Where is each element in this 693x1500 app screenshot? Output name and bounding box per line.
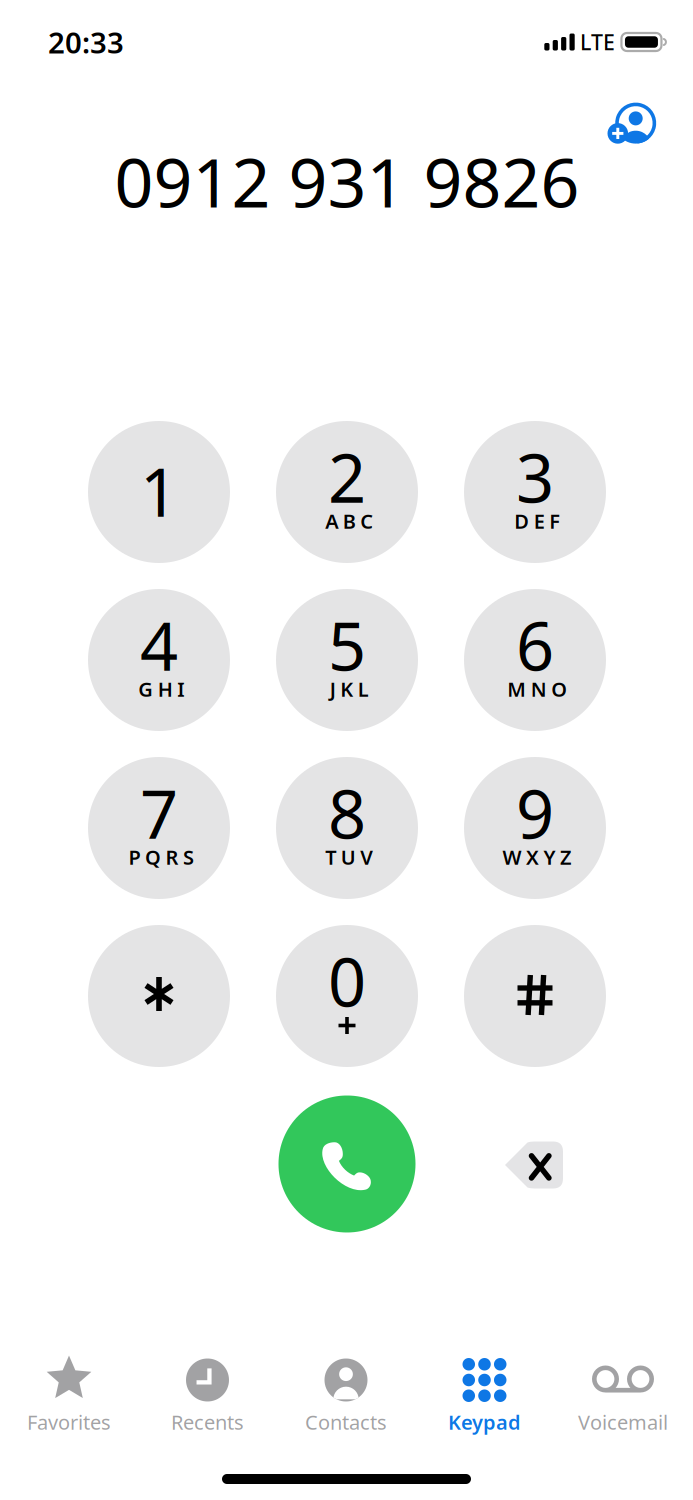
- staticText: Keypad: [448, 1409, 521, 1435]
- staticText: 0: [328, 937, 366, 1025]
- button[interactable]: 6 MNO: [464, 589, 606, 731]
- staticText: GHI: [138, 676, 184, 702]
- staticText: 8: [328, 769, 366, 857]
- staticText: 7: [140, 769, 178, 857]
- button[interactable]: 5 JKL: [276, 589, 418, 731]
- staticText: 6: [516, 601, 554, 689]
- button[interactable]: Contacts: [277, 1322, 415, 1440]
- button[interactable]: 8 TUV: [276, 757, 418, 899]
- staticText: 0912 931 9826: [114, 136, 579, 226]
- button[interactable]: Voicemail: [554, 1322, 692, 1440]
- button[interactable]: Delete: [503, 1141, 563, 1188]
- staticText: Recents: [171, 1409, 244, 1435]
- staticText: 4: [140, 601, 178, 689]
- staticText: TUV: [325, 844, 373, 870]
- staticText: JKL: [330, 676, 369, 702]
- staticText: Contacts: [305, 1409, 387, 1435]
- button[interactable]: 2 ABC: [276, 421, 418, 563]
- button[interactable]: Keypad: [415, 1322, 553, 1440]
- staticText: 20:33: [48, 22, 124, 61]
- staticText: PQRS: [128, 844, 194, 870]
- staticText: 5: [328, 601, 366, 689]
- button[interactable]: Pound: [464, 925, 606, 1067]
- staticText: ABC: [325, 508, 373, 534]
- button[interactable]: 7 PQRS: [88, 757, 230, 899]
- button[interactable]: Favorites: [0, 1322, 138, 1440]
- button[interactable]: 9 WXYZ: [464, 757, 606, 899]
- button[interactable]: 0 plus: [276, 925, 418, 1067]
- button[interactable]: 1: [88, 421, 230, 563]
- staticText: LTE: [580, 28, 615, 56]
- staticText: Voicemail: [578, 1409, 668, 1435]
- button[interactable]: Add Contact: [607, 102, 655, 146]
- staticText: 9: [516, 769, 554, 857]
- button[interactable]: Star: [88, 925, 230, 1067]
- staticText: 2: [328, 433, 366, 521]
- staticText: 1: [140, 447, 178, 535]
- staticText: MNO: [507, 676, 567, 702]
- staticText: WXYZ: [502, 844, 572, 870]
- staticText: 3: [516, 433, 554, 521]
- staticText: Favorites: [27, 1409, 111, 1435]
- button[interactable]: 4 GHI: [88, 589, 230, 731]
- staticText: DEF: [514, 508, 560, 534]
- button[interactable]: Call: [278, 1095, 415, 1232]
- button[interactable]: Recents: [138, 1322, 276, 1440]
- button[interactable]: 3 DEF: [464, 421, 606, 563]
